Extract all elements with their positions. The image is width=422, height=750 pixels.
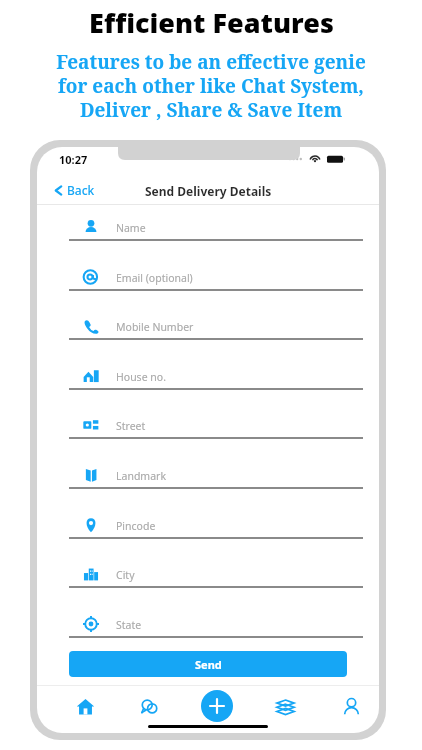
- staticText: State: [116, 618, 142, 632]
- staticText: City: [116, 568, 135, 582]
- button[interactable]: Mobile Number: [53, 310, 363, 346]
- button[interactable]: Collections: [271, 692, 299, 720]
- button[interactable]: Back: [49, 179, 99, 201]
- staticText: Mobile Number: [116, 320, 194, 334]
- staticText: Pincode: [116, 519, 156, 533]
- button[interactable]: Pincode: [53, 509, 363, 545]
- staticText: Send: [195, 657, 222, 672]
- staticText: House no.: [116, 370, 166, 384]
- button[interactable]: Landmark: [53, 459, 363, 495]
- button[interactable]: Add: [201, 690, 233, 722]
- button[interactable]: State: [53, 608, 363, 644]
- staticText: Landmark: [116, 469, 166, 483]
- staticText: Features to be an effective genie for ea…: [56, 49, 366, 122]
- button[interactable]: Name: [53, 211, 363, 247]
- button[interactable]: House no.: [53, 360, 363, 396]
- staticText: 10:27: [59, 152, 88, 167]
- button[interactable]: Send: [69, 651, 347, 677]
- staticText: Send Delivery Details: [145, 183, 272, 199]
- button[interactable]: City: [53, 558, 363, 594]
- button[interactable]: Street: [53, 409, 363, 445]
- staticText: Efficient Features: [89, 4, 334, 41]
- staticText: Back: [67, 182, 95, 198]
- button[interactable]: Email (optional): [53, 261, 363, 297]
- button[interactable]: Chat: [135, 692, 163, 720]
- button[interactable]: Home: [71, 692, 99, 720]
- button[interactable]: Profile: [337, 692, 365, 720]
- staticText: Street: [116, 419, 146, 433]
- staticText: Email (optional): [116, 271, 193, 285]
- staticText: Name: [116, 221, 146, 235]
